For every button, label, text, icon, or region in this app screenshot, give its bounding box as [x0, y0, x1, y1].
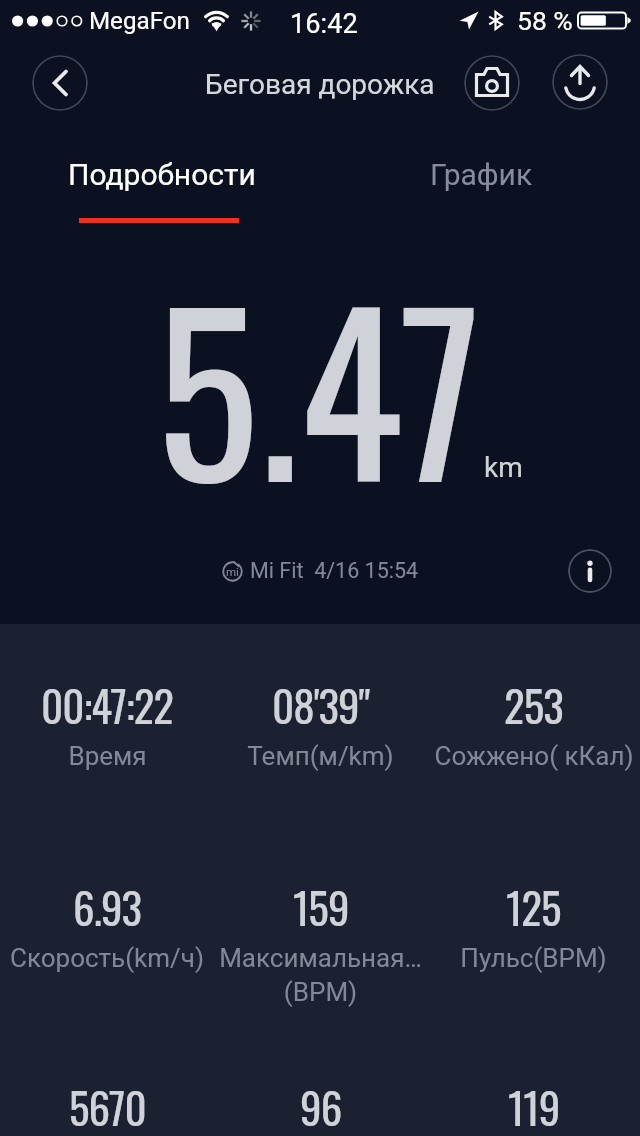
staticText: 5670	[69, 1075, 146, 1136]
button[interactable]: Info	[568, 549, 612, 593]
staticText: km	[484, 451, 523, 484]
staticText: Пульс(BPM)	[460, 943, 607, 973]
staticText: mi	[226, 565, 239, 578]
button[interactable]: Share	[552, 54, 608, 110]
staticText: 125	[506, 875, 561, 939]
staticText: 6.93	[73, 875, 142, 939]
staticText: 119	[508, 1075, 560, 1136]
staticText: MegaFon	[89, 7, 190, 35]
staticText: Темп(м/km)	[247, 741, 394, 771]
staticText: Беговая дорожка	[205, 68, 435, 101]
staticText: Mi Fit 4/16 15:54	[250, 558, 419, 583]
staticText: Подробности	[68, 157, 256, 192]
button[interactable]: Подробности	[0, 126, 320, 240]
staticText: 253	[504, 673, 563, 737]
staticText: 5.47	[156, 226, 482, 545]
staticText: Скорость(km/ч)	[10, 943, 204, 973]
staticText: 00:47:22	[41, 673, 173, 737]
button[interactable]: График	[320, 126, 640, 240]
staticText: График	[430, 157, 533, 192]
button[interactable]: Camera	[464, 55, 520, 111]
staticText: 96	[300, 1075, 342, 1136]
staticText: 08'39"	[272, 673, 370, 737]
button[interactable]: Back	[32, 55, 88, 111]
staticText: 159	[293, 875, 349, 939]
staticText: Время	[68, 741, 147, 771]
staticText: Сожжено( кКал)	[434, 741, 634, 771]
staticText: 58 %	[517, 5, 573, 36]
staticText: 16:42	[290, 8, 358, 40]
staticText: Максимальная… (BPM)	[219, 943, 422, 1007]
